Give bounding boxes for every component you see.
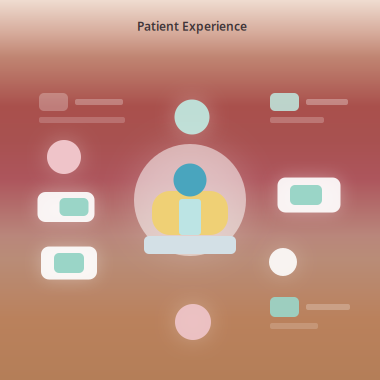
button[interactable]: Feature	[37, 192, 94, 222]
button[interactable]: Highlight	[47, 140, 81, 174]
button[interactable]: Feature	[277, 177, 340, 212]
button[interactable]: Detail	[270, 93, 348, 123]
button[interactable]: Detail	[39, 93, 125, 123]
staticText: Patient Experience	[137, 18, 247, 34]
button[interactable]: Feature	[41, 246, 97, 279]
button[interactable]: Highlight	[174, 99, 209, 134]
button[interactable]: Highlight	[175, 304, 211, 340]
button[interactable]: Highlight	[269, 248, 297, 276]
button[interactable]: Patient Experience	[137, 18, 247, 34]
button[interactable]: Detail	[270, 297, 350, 329]
